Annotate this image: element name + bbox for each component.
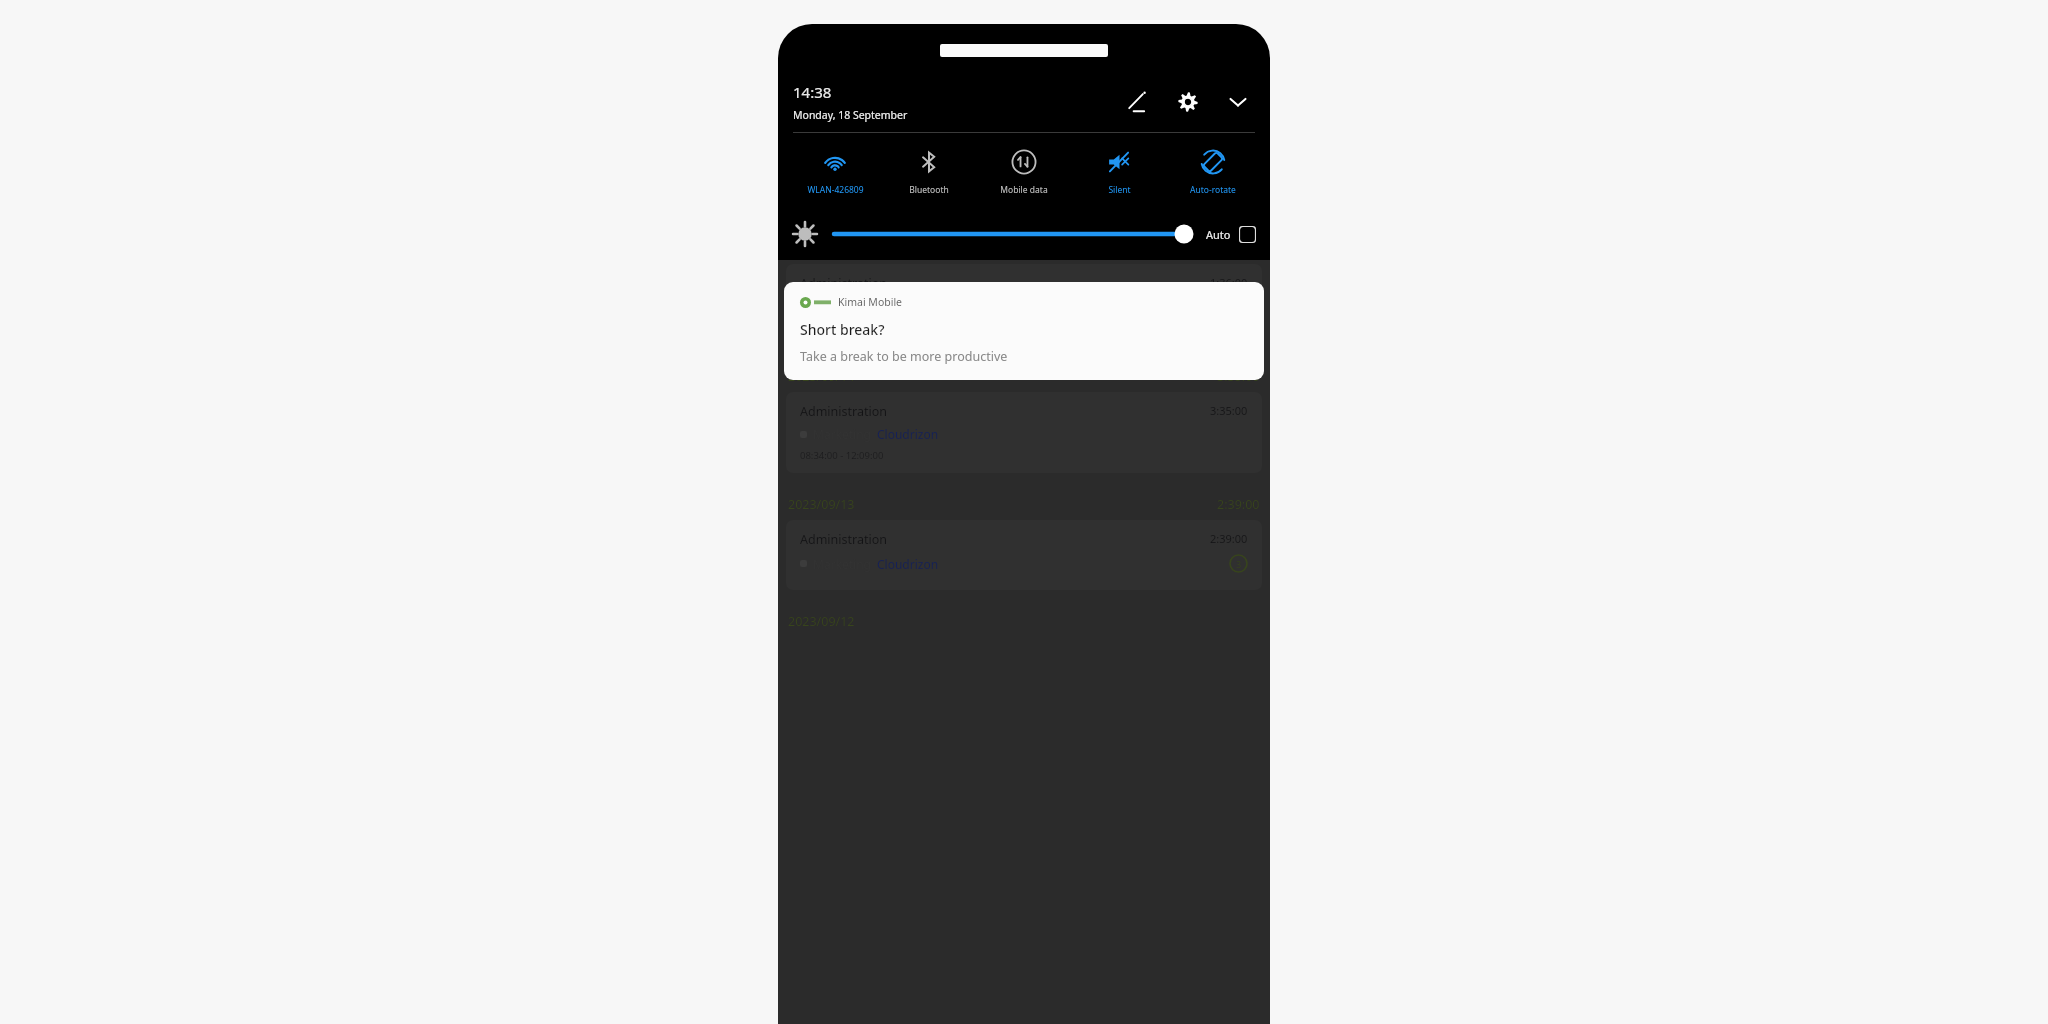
button[interactable]: Administration [786, 264, 1262, 345]
staticText: 10:00:00 - 11:36:00 [800, 321, 884, 334]
button[interactable]: Edit [1121, 85, 1155, 119]
button[interactable]: Collapse [1221, 85, 1255, 119]
staticText: 2023/09/13 [788, 496, 855, 513]
button[interactable]: Bluetooth [885, 147, 973, 198]
staticText: Mobile data [1000, 184, 1048, 196]
staticText: Short break? [800, 320, 885, 339]
staticText: 3 [1236, 558, 1242, 570]
staticText: 2023/09/12 [788, 613, 855, 630]
staticText: 2023/09/14 [788, 368, 855, 385]
staticText: Cloudrizon [877, 426, 939, 442]
staticText: Cloudrizon [877, 556, 939, 572]
other: Brightness [792, 221, 818, 247]
button[interactable]: Kimai Mobile [784, 282, 1264, 380]
staticText: Marketing [813, 298, 871, 314]
staticText: 3:35:00 [1217, 368, 1260, 385]
button[interactable]: WLAN-426809 [791, 147, 879, 198]
staticText: Auto-rotate [1190, 184, 1236, 196]
staticText: 08:34:00 - 12:09:00 [800, 449, 884, 462]
staticText: Bluetooth [909, 184, 949, 196]
staticText: Administration [800, 531, 887, 548]
staticText: Silent [1108, 184, 1131, 196]
button[interactable]: Mobile data [980, 147, 1068, 198]
button[interactable]: Settings [1171, 85, 1205, 119]
staticText: Administration [800, 275, 887, 292]
staticText: 3:35:00 [1210, 403, 1248, 418]
button[interactable]: Auto-rotate [1169, 147, 1257, 198]
staticText: Kimai Mobile [838, 295, 903, 309]
button[interactable]: Auto [1206, 226, 1256, 243]
staticText: Take a break to be more productive [800, 348, 1008, 365]
button[interactable]: Silent [1075, 147, 1163, 198]
staticText: Cloudrizon [877, 298, 939, 314]
button[interactable] [834, 222, 1194, 246]
staticText: Administration [800, 403, 887, 420]
staticText: 1:36:00 [1210, 275, 1248, 290]
staticText: WLAN-426809 [807, 184, 864, 196]
staticText: Monday, 18 September [793, 108, 908, 122]
staticText: 14:38 [793, 82, 832, 102]
staticText: 2:39:00 [1217, 496, 1260, 513]
staticText: Auto [1206, 227, 1231, 242]
staticText: 2:39:00 [1210, 531, 1248, 546]
